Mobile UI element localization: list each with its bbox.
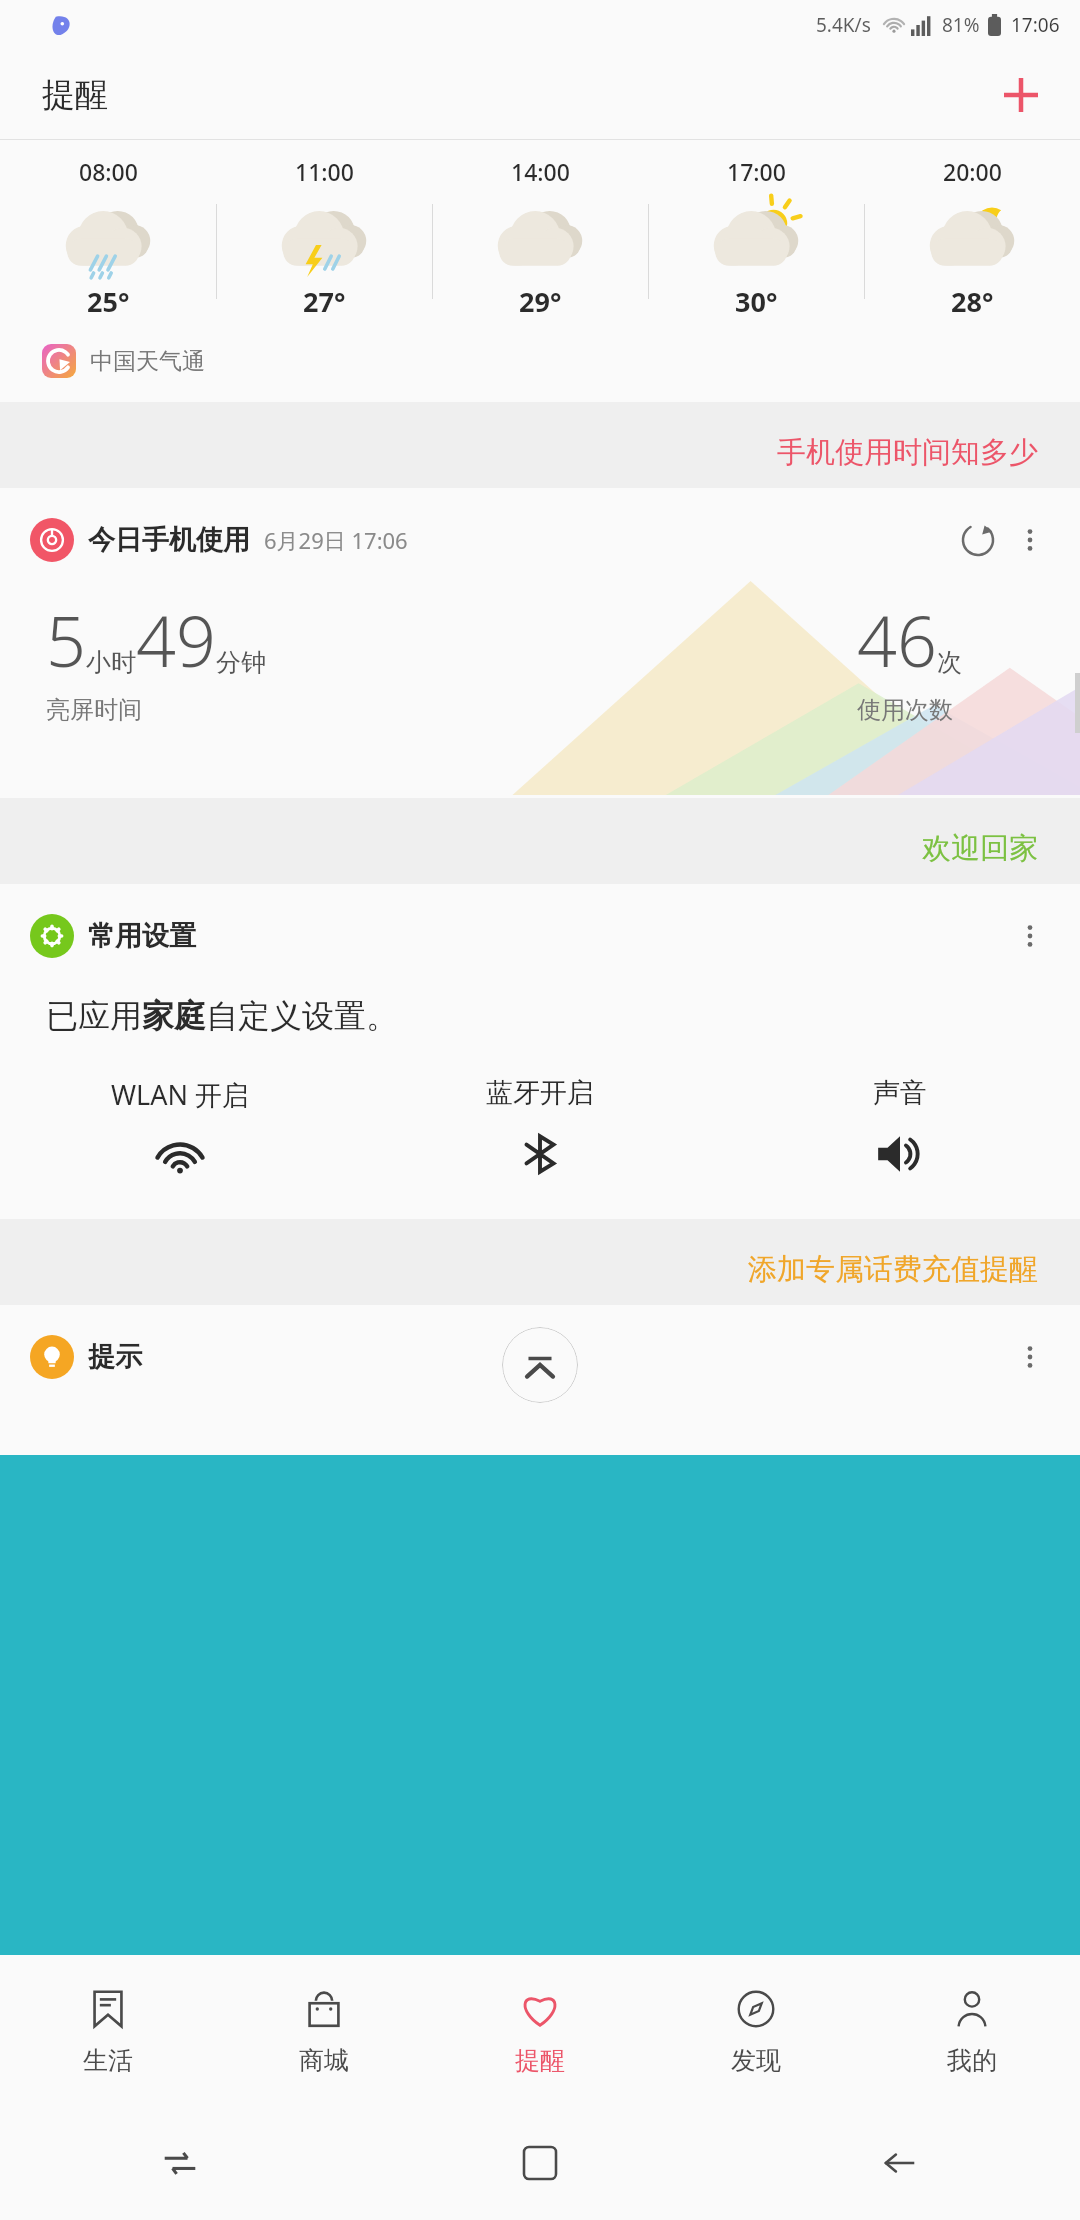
staticText: 30° bbox=[735, 283, 778, 320]
button[interactable]: 添加提醒 bbox=[992, 66, 1050, 124]
staticText: 我的 bbox=[947, 2045, 997, 2076]
staticText: 中国天气通 bbox=[90, 347, 205, 376]
button[interactable]: 更多选项 bbox=[1004, 514, 1056, 566]
staticText: 49 bbox=[136, 592, 216, 687]
staticText: 29° bbox=[519, 283, 562, 320]
staticText: 常用设置 bbox=[88, 919, 196, 953]
staticText: 今日手机使用 bbox=[88, 523, 250, 557]
staticText: 蓝牙开启 bbox=[486, 1076, 594, 1110]
staticText: 20:00 bbox=[943, 156, 1002, 187]
button[interactable]: 更多选项 bbox=[1004, 1331, 1056, 1383]
button[interactable]: 常用设置 bbox=[0, 884, 1080, 1219]
staticText: 商城 bbox=[299, 2045, 349, 2076]
staticText: 自定义设置。 bbox=[206, 996, 398, 1036]
staticText: 提醒 bbox=[42, 74, 108, 116]
button[interactable]: 提示 bbox=[0, 1305, 1080, 1455]
button[interactable]: 商城 bbox=[216, 1955, 432, 2105]
button[interactable]: 发现 bbox=[648, 1955, 864, 2105]
button[interactable]: 声音 bbox=[720, 1076, 1080, 1180]
staticText: 5 bbox=[46, 592, 86, 687]
button[interactable]: 提醒 bbox=[432, 1955, 648, 2105]
staticText: 手机使用时间知多少 bbox=[777, 434, 1038, 471]
button[interactable]: 主页 bbox=[360, 2105, 720, 2220]
staticText: 欢迎回家 bbox=[922, 830, 1038, 867]
staticText: 提醒 bbox=[515, 2045, 565, 2076]
button[interactable]: 蓝牙开启 bbox=[360, 1076, 720, 1180]
staticText: WLAN 开启 bbox=[111, 1076, 250, 1113]
staticText: 分钟 bbox=[216, 647, 266, 678]
staticText: 生活 bbox=[83, 2045, 133, 2076]
staticText: 家庭 bbox=[142, 996, 206, 1036]
staticText: 08:00 bbox=[79, 156, 138, 187]
staticText: 11:00 bbox=[295, 156, 354, 187]
staticText: 81% bbox=[942, 12, 980, 38]
staticText: 28° bbox=[951, 283, 994, 320]
staticText: 46 bbox=[857, 592, 937, 687]
staticText: 亮屏时间 bbox=[46, 695, 142, 725]
staticText: 添加专属话费充值提醒 bbox=[748, 1251, 1038, 1288]
button[interactable]: 今日手机使用 bbox=[0, 488, 1080, 798]
button[interactable]: 收起 bbox=[502, 1327, 578, 1403]
staticText: 小时 bbox=[86, 647, 136, 678]
staticText: 提示 bbox=[88, 1340, 142, 1374]
button[interactable]: 我的 bbox=[864, 1955, 1080, 2105]
staticText: 17:00 bbox=[727, 156, 786, 187]
button[interactable]: 刷新 bbox=[952, 514, 1004, 566]
button[interactable]: 最近任务 bbox=[0, 2105, 360, 2220]
staticText: 27° bbox=[303, 283, 346, 320]
staticText: 5.4K/s bbox=[816, 12, 871, 38]
staticText: 17:06 bbox=[1011, 12, 1060, 38]
button[interactable]: 生活 bbox=[0, 1955, 216, 2105]
button[interactable]: 08:00 bbox=[0, 140, 1080, 402]
staticText: 6月29日 17:06 bbox=[264, 525, 408, 555]
button[interactable]: 更多选项 bbox=[1004, 910, 1056, 962]
staticText: 发现 bbox=[731, 2045, 781, 2076]
staticText: 次 bbox=[937, 647, 962, 678]
staticText: 已应用 bbox=[46, 996, 142, 1036]
staticText: 14:00 bbox=[511, 156, 570, 187]
staticText: 25° bbox=[87, 283, 130, 320]
staticText: 使用次数 bbox=[857, 695, 953, 725]
button[interactable]: 返回 bbox=[720, 2105, 1080, 2220]
button[interactable]: WLAN 开启 bbox=[0, 1076, 360, 1183]
staticText: 声音 bbox=[873, 1076, 927, 1110]
